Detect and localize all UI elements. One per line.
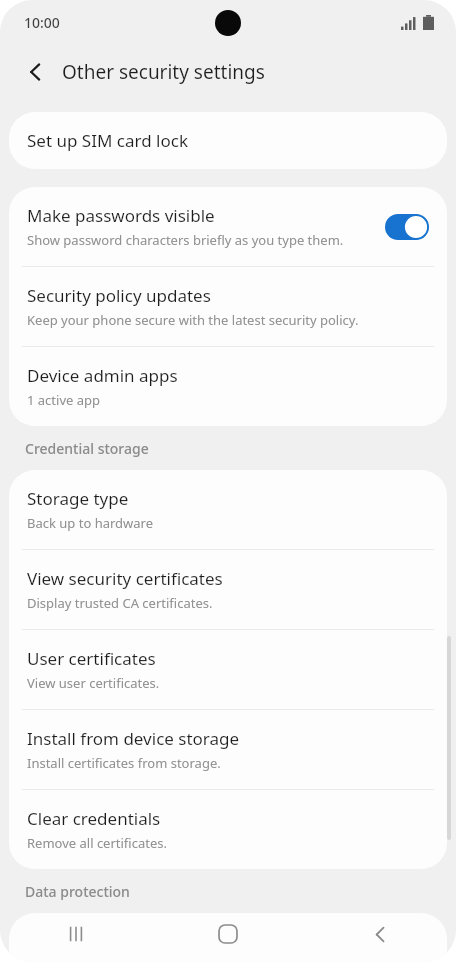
button[interactable]: View security certificates	[9, 550, 447, 629]
staticText: Keep your phone secure with the latest s…	[27, 311, 359, 329]
staticText: User certificates	[27, 647, 156, 670]
button[interactable]: Home	[200, 906, 256, 962]
button[interactable]: Device admin apps	[9, 347, 447, 426]
staticText: Set up SIM card lock	[27, 129, 188, 152]
button[interactable]: Recent apps	[48, 906, 104, 962]
staticText: Display trusted CA certificates.	[27, 594, 213, 612]
button[interactable]: Install from device storage	[9, 710, 447, 789]
button[interactable]: Back	[352, 906, 408, 962]
button[interactable]: User certificates	[9, 630, 447, 709]
button[interactable]: Storage type	[9, 470, 447, 549]
button[interactable]: Set up SIM card lock	[9, 112, 447, 169]
staticText: Back up to hardware	[27, 514, 154, 532]
button[interactable]	[9, 913, 447, 962]
staticText: Other security settings	[62, 59, 265, 85]
staticText: View security certificates	[27, 567, 223, 590]
staticText: View user certificates.	[27, 674, 160, 692]
button[interactable]: Back	[16, 52, 56, 92]
staticText: Make passwords visible	[27, 204, 215, 227]
staticText: Install certificates from storage.	[27, 754, 221, 772]
staticText: Install from device storage	[27, 727, 240, 750]
button[interactable]: Security policy updates	[9, 267, 447, 346]
staticText: Data protection	[25, 882, 130, 901]
staticText: Device admin apps	[27, 364, 178, 387]
button[interactable]: Make passwords visible	[9, 187, 447, 266]
staticText: Security policy updates	[27, 284, 211, 307]
staticText: Credential storage	[25, 439, 149, 458]
staticText: 1 active app	[27, 391, 100, 409]
staticText: Clear credentials	[27, 807, 161, 830]
staticText: Show password characters briefly as you …	[27, 231, 344, 249]
button[interactable]: Clear credentials	[9, 790, 447, 869]
staticText: 10:00	[24, 13, 60, 32]
staticText: Remove all certificates.	[27, 834, 167, 852]
staticText: Storage type	[27, 487, 129, 510]
